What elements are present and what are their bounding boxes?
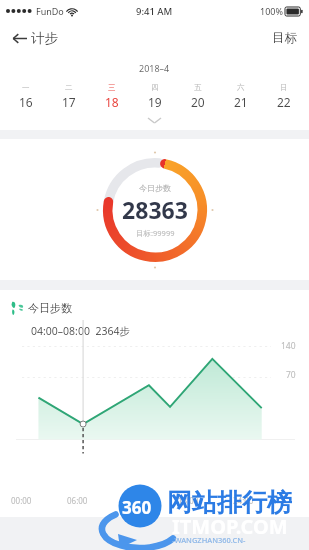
- button[interactable]: 三: [90, 81, 133, 112]
- staticText: 04:00–08:00 2364步: [31, 324, 130, 338]
- staticText: 三: [108, 83, 116, 92]
- staticText: 网站排行榜: [167, 487, 292, 518]
- staticText: 16: [19, 94, 33, 110]
- staticText: 五: [194, 83, 202, 92]
- button[interactable]: 四: [133, 81, 176, 112]
- staticText: 70: [286, 369, 296, 381]
- staticText: 100%: [260, 5, 283, 17]
- staticText: 28363: [122, 194, 188, 225]
- button[interactable]: 二: [47, 81, 90, 112]
- staticText: 目标: [272, 30, 297, 46]
- staticText: 18:00: [178, 495, 199, 506]
- button[interactable]: 今日步数: [96, 151, 214, 269]
- button[interactable]: 六: [219, 81, 262, 112]
- staticText: -WANGZHAN360.CN-: [172, 535, 246, 545]
- staticText: 四: [151, 83, 159, 92]
- staticText: 计步: [31, 30, 58, 47]
- staticText: 目标:99999: [136, 228, 175, 238]
- staticText: 二: [65, 83, 73, 92]
- staticText: 19: [148, 94, 162, 110]
- button[interactable]: 目标: [260, 24, 309, 52]
- staticText: 17: [62, 94, 76, 110]
- button[interactable]: Expand calendar: [128, 115, 181, 126]
- staticText: 21: [234, 94, 248, 110]
- staticText: 22: [277, 94, 291, 110]
- button[interactable]: 五: [176, 81, 219, 112]
- staticText: 20: [191, 94, 205, 110]
- staticText: 18: [105, 94, 119, 110]
- staticText: ITMOP.COM: [172, 513, 288, 540]
- staticText: 2018–4: [139, 62, 170, 74]
- staticText: 今日步数: [139, 183, 171, 193]
- button[interactable]: 一: [4, 81, 47, 112]
- other: Expand calendar: [148, 117, 161, 124]
- button[interactable]: 日: [262, 81, 305, 112]
- staticText: 12:00: [122, 495, 143, 506]
- staticText: 24:00: [233, 495, 254, 506]
- other: Back: [12, 32, 27, 45]
- staticText: 9:41 AM: [136, 5, 173, 18]
- staticText: FunDo: [36, 5, 64, 17]
- staticText: 140: [281, 340, 296, 352]
- staticText: 06:00: [67, 495, 88, 506]
- staticText: 六: [237, 83, 245, 92]
- staticText: 日: [280, 83, 288, 92]
- staticText: 360: [122, 496, 152, 519]
- staticText: 一: [22, 83, 30, 92]
- staticText: 00:00: [11, 495, 32, 506]
- button[interactable]: Back: [0, 26, 68, 51]
- staticText: 今日步数: [28, 301, 72, 315]
